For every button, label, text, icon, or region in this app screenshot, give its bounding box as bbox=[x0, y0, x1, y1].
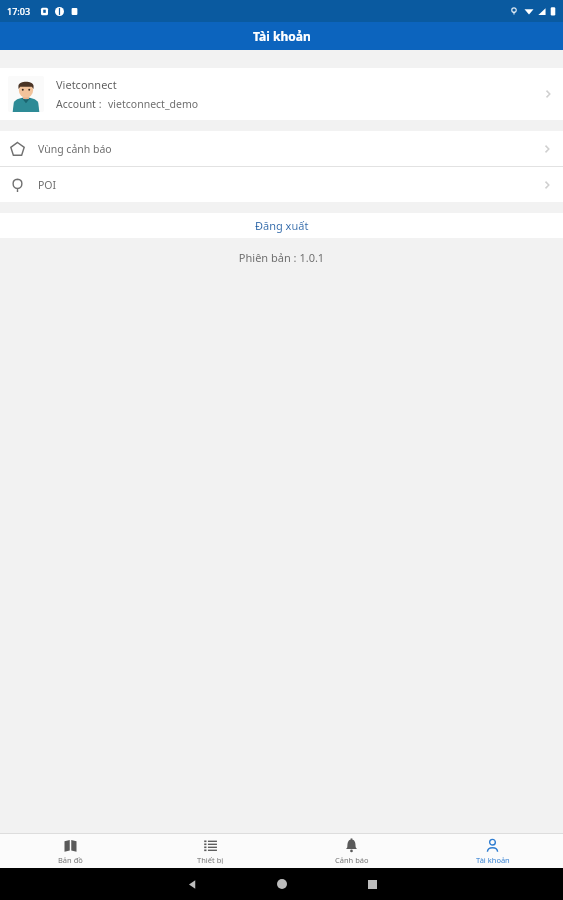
button[interactable]: Vùng cảnh báo bbox=[0, 131, 563, 166]
button[interactable]: Tài khoản bbox=[422, 834, 563, 868]
staticText: Cảnh báo bbox=[335, 855, 369, 865]
button[interactable]: POI bbox=[0, 167, 563, 202]
staticText: Vùng cảnh báo bbox=[38, 142, 112, 156]
button[interactable]: Recents bbox=[327, 880, 417, 889]
staticText: 17:03 bbox=[7, 5, 31, 17]
button[interactable]: Back bbox=[147, 879, 237, 890]
staticText: Phiên bản : 1.0.1 bbox=[0, 250, 563, 265]
button[interactable]: Vietconnect bbox=[0, 68, 563, 120]
button[interactable]: Đăng xuất bbox=[0, 213, 563, 238]
staticText: POI bbox=[38, 178, 57, 192]
button[interactable]: Thiết bị bbox=[140, 834, 281, 868]
staticText: Account : bbox=[56, 97, 102, 111]
staticText: Đăng xuất bbox=[255, 218, 309, 233]
staticText: Tài khoản bbox=[476, 855, 510, 865]
button[interactable]: Home bbox=[237, 879, 327, 889]
staticText: Thiết bị bbox=[197, 855, 224, 865]
staticText: Vietconnect bbox=[56, 77, 117, 92]
button[interactable]: Bản đồ bbox=[0, 834, 140, 868]
staticText: Tài khoản bbox=[253, 28, 311, 44]
staticText: vietconnect_demo bbox=[108, 97, 199, 111]
button[interactable]: Cảnh báo bbox=[281, 834, 422, 868]
staticText: Bản đồ bbox=[58, 855, 83, 865]
